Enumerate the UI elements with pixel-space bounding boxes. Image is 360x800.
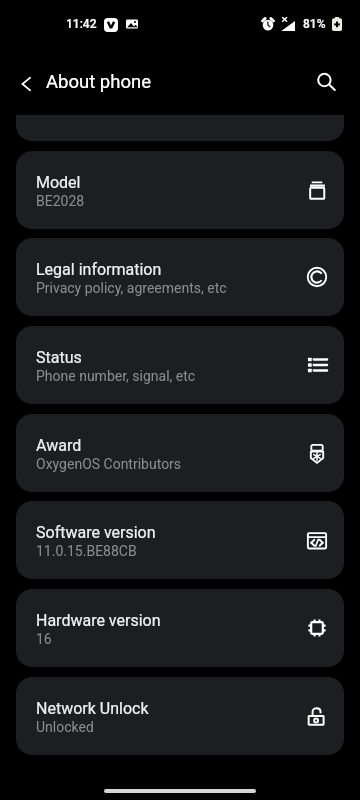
button[interactable]: Award — [16, 414, 344, 492]
staticText: Unlocked — [36, 719, 94, 735]
staticText: Award — [36, 436, 82, 455]
staticText: 16 — [36, 631, 52, 647]
button[interactable]: Status — [16, 326, 344, 404]
staticText: Hardware version — [36, 611, 161, 630]
staticText: Network Unlock — [36, 699, 149, 718]
staticText: 11:42 — [66, 17, 97, 31]
button[interactable]: Software version — [16, 501, 344, 579]
staticText: Privacy policy, agreements, etc — [36, 280, 227, 296]
staticText: Phone number, signal, etc — [36, 368, 196, 384]
staticText: Model — [36, 173, 81, 192]
button[interactable] — [16, 115, 344, 141]
staticText: Legal information — [36, 260, 162, 279]
staticText: About phone — [46, 71, 152, 93]
staticText: OxygenOS Contributors — [36, 456, 182, 472]
button[interactable]: Network Unlock — [16, 677, 344, 755]
staticText: 81% — [303, 17, 326, 31]
button[interactable]: Hardware version — [16, 589, 344, 667]
button[interactable]: Model — [16, 151, 344, 229]
button[interactable]: Back — [8, 66, 44, 102]
staticText: 11.0.15.BE88CB — [36, 543, 137, 559]
button[interactable]: Search — [308, 64, 344, 100]
button[interactable]: Legal information — [16, 238, 344, 316]
staticText: Software version — [36, 523, 156, 542]
staticText: BE2028 — [36, 193, 85, 209]
staticText: Status — [36, 348, 82, 367]
